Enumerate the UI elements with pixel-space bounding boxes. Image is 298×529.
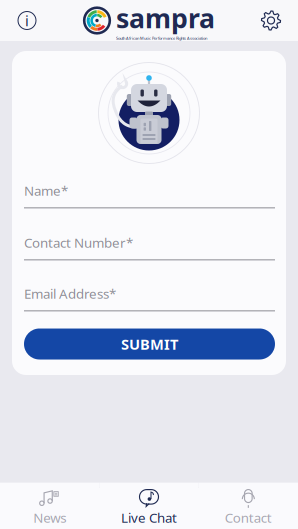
staticText: sampra <box>116 0 215 35</box>
button[interactable]: Settings <box>254 1 288 39</box>
staticText: Contact Number* <box>24 234 133 251</box>
button[interactable]: Contact <box>199 488 298 529</box>
staticText: Contact <box>225 509 272 526</box>
staticText: Email Address* <box>24 285 116 302</box>
staticText: i <box>25 11 29 30</box>
staticText: SUBMIT <box>121 334 178 354</box>
staticText: Live Chat <box>121 509 177 526</box>
staticText: South African Music Performance Rights A… <box>116 36 207 41</box>
button[interactable]: Information <box>10 1 44 39</box>
staticText: News <box>33 509 66 526</box>
button[interactable]: News <box>0 488 99 529</box>
button[interactable]: Live Chat <box>99 488 199 529</box>
staticText: Name* <box>24 182 68 199</box>
button[interactable]: SUBMIT <box>24 328 275 359</box>
